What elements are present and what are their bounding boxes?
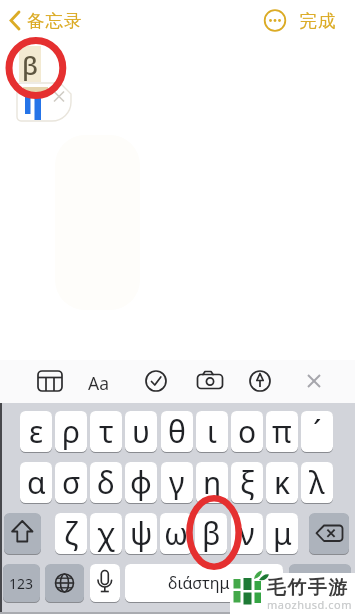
button[interactable]: υ xyxy=(125,411,157,452)
staticText: ´ xyxy=(313,411,322,452)
button[interactable]: ξ xyxy=(231,462,263,503)
staticText: ι xyxy=(207,411,217,452)
button[interactable] xyxy=(0,0,120,40)
staticText: 毛竹手游 xyxy=(266,576,348,600)
button[interactable] xyxy=(45,564,84,602)
staticText: ρ xyxy=(62,411,80,452)
staticText: ω xyxy=(164,513,188,554)
staticText: α xyxy=(27,462,46,503)
button[interactable]: λ xyxy=(301,462,333,503)
button[interactable]: ι xyxy=(196,411,228,452)
button[interactable] xyxy=(260,5,290,35)
button[interactable]: ρ xyxy=(55,411,87,452)
staticText: ψ xyxy=(130,513,153,554)
staticText: ν xyxy=(239,513,255,554)
staticText: Aa xyxy=(88,371,109,395)
button[interactable]: 123 xyxy=(3,564,40,602)
staticText: χ xyxy=(97,513,115,554)
button[interactable]: δ xyxy=(90,462,122,503)
staticText: β xyxy=(202,513,221,554)
staticText: ο xyxy=(238,411,257,452)
button[interactable]: μ xyxy=(266,513,298,554)
button[interactable] xyxy=(90,564,120,602)
button[interactable] xyxy=(34,365,66,397)
staticText: τ xyxy=(99,411,114,452)
button[interactable]: η xyxy=(196,462,228,503)
button[interactable]: ´ xyxy=(301,411,333,452)
button[interactable] xyxy=(4,513,41,554)
button[interactable]: ο xyxy=(231,411,263,452)
staticText: φ xyxy=(130,462,152,503)
button[interactable]: σ xyxy=(55,462,87,503)
staticText: β xyxy=(22,47,39,82)
button[interactable]: ε xyxy=(20,411,52,452)
button[interactable]: τ xyxy=(90,411,122,452)
staticText: ζ xyxy=(64,513,78,554)
staticText: διάστημα xyxy=(168,572,240,594)
button[interactable]: ψ xyxy=(125,513,157,554)
staticText: 123 xyxy=(9,574,34,593)
staticText: γ xyxy=(169,462,185,503)
button[interactable] xyxy=(290,2,350,38)
button[interactable]: διάστημα xyxy=(125,564,283,602)
button[interactable] xyxy=(140,365,172,397)
staticText: 完成 xyxy=(299,10,336,32)
staticText: θ xyxy=(168,411,186,452)
staticText: ε xyxy=(29,411,44,452)
staticText: υ xyxy=(132,411,150,452)
button[interactable]: φ xyxy=(125,462,157,503)
staticText: λ xyxy=(309,462,325,503)
button[interactable] xyxy=(298,365,330,397)
button[interactable] xyxy=(194,365,226,397)
staticText: δ xyxy=(97,462,115,503)
button[interactable]: θ xyxy=(161,411,193,452)
staticText: μ xyxy=(273,513,292,554)
button[interactable]: π xyxy=(266,411,298,452)
button[interactable]: κ xyxy=(266,462,298,503)
button[interactable] xyxy=(244,365,276,397)
button[interactable]: ζ xyxy=(55,513,87,554)
staticText: η xyxy=(203,462,222,503)
staticText: ξ xyxy=(240,462,255,503)
button[interactable]: ω xyxy=(160,513,192,554)
button[interactable]: ν xyxy=(231,513,263,554)
button[interactable]: χ xyxy=(90,513,122,554)
staticText: σ xyxy=(62,462,81,503)
staticText: κ xyxy=(274,462,291,503)
staticText: π xyxy=(272,411,292,452)
staticText: maozhusd.com xyxy=(267,597,352,612)
button[interactable]: γ xyxy=(161,462,193,503)
button[interactable] xyxy=(230,573,355,614)
button[interactable]: β xyxy=(195,513,227,554)
button[interactable] xyxy=(309,513,349,554)
button[interactable]: α xyxy=(20,462,52,503)
button[interactable] xyxy=(289,564,351,602)
staticText: 备忘录 xyxy=(27,10,83,32)
